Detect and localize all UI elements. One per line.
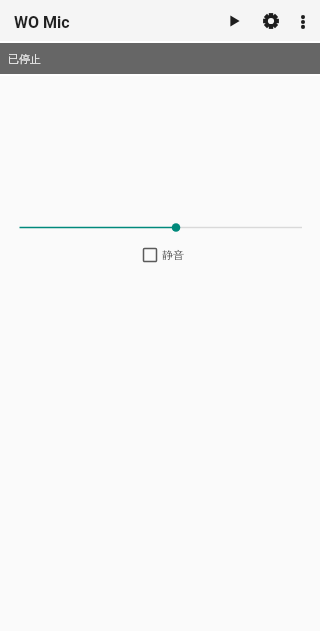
button[interactable]: Start (218, 4, 252, 38)
button[interactable]: 静音 (140, 245, 184, 265)
button[interactable]: More options (286, 4, 320, 38)
button[interactable]: Volume (0, 211, 320, 243)
staticText: 已停止 (8, 52, 41, 66)
button[interactable]: Settings (254, 4, 288, 38)
staticText: WO Mic (14, 13, 70, 32)
staticText: 静音 (162, 248, 184, 262)
